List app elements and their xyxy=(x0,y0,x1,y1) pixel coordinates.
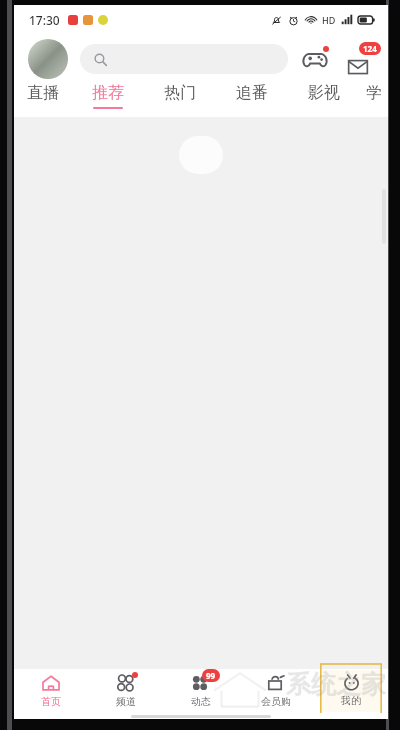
staticText: 99 xyxy=(206,670,216,681)
button[interactable]: Messages xyxy=(342,43,374,75)
staticText: 追番 xyxy=(236,83,268,103)
button[interactable]: 会员购 xyxy=(238,669,313,713)
button[interactable]: 我的 xyxy=(320,670,382,712)
button[interactable]: 频道 xyxy=(88,669,163,713)
button[interactable]: 热门 xyxy=(144,83,216,117)
button[interactable]: 直播 xyxy=(14,83,72,117)
button[interactable]: Profile xyxy=(28,39,68,79)
button[interactable] xyxy=(80,44,288,74)
staticText: 频道 xyxy=(116,695,136,708)
staticText: 热门 xyxy=(164,83,196,103)
button[interactable]: 追番 xyxy=(216,83,288,117)
staticText: 系统之家 xyxy=(286,669,386,700)
button[interactable]: 99 xyxy=(163,669,238,713)
button[interactable]: 学 xyxy=(360,83,388,117)
staticText: 我的 xyxy=(341,694,361,707)
button[interactable]: Games xyxy=(300,44,330,74)
staticText: 动态 xyxy=(191,695,211,708)
button[interactable]: 首页 xyxy=(14,669,88,713)
staticText: 直播 xyxy=(27,83,59,103)
staticText: 推荐 xyxy=(92,83,124,103)
staticText: 17:30 xyxy=(29,12,60,28)
button[interactable]: 推荐 xyxy=(72,83,144,117)
staticText: 124 xyxy=(363,43,377,54)
staticText: HD xyxy=(322,14,336,26)
staticText: 会员购 xyxy=(261,695,291,708)
staticText: 首页 xyxy=(41,695,61,708)
staticText: 学 xyxy=(366,83,382,103)
staticText: 影视 xyxy=(308,83,340,103)
button[interactable]: 影视 xyxy=(288,83,360,117)
